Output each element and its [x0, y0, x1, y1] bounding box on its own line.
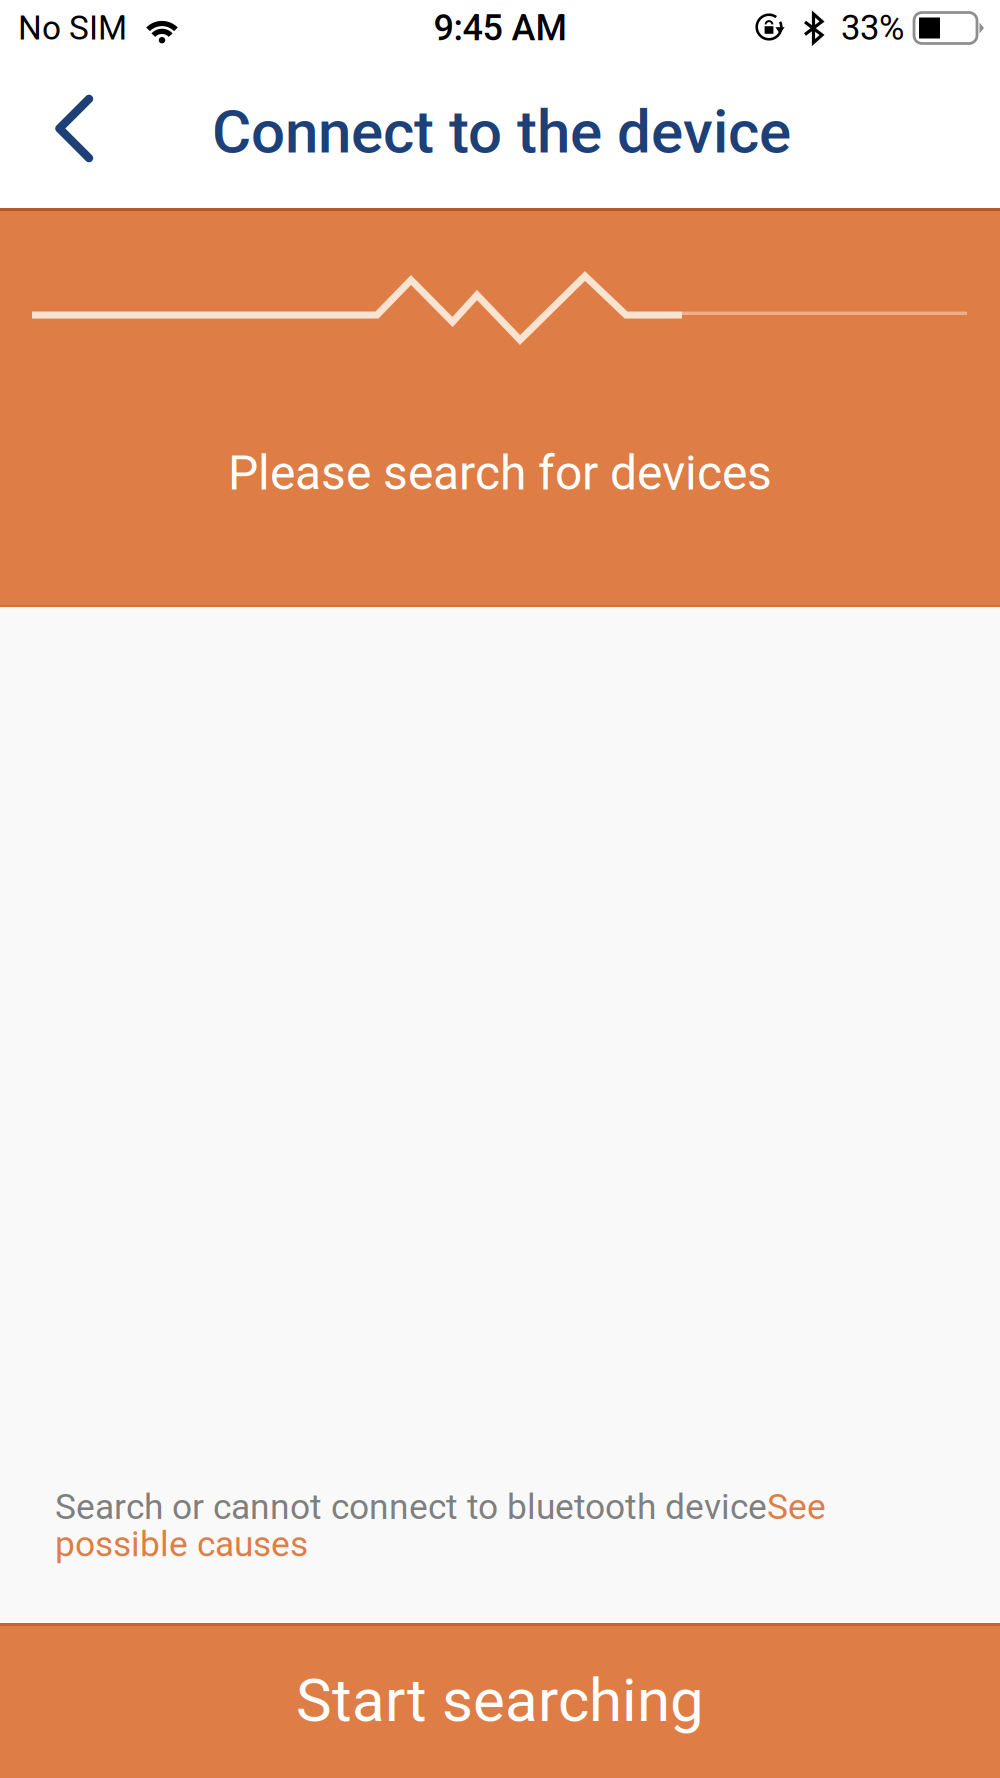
button[interactable]: Start searching	[0, 1623, 1000, 1778]
button[interactable]: Search or cannot connect to bluetooth de…	[0, 1486, 1000, 1565]
staticText: 9:45 AM	[433, 7, 566, 49]
staticText: Search or cannot connect to bluetooth de…	[55, 1486, 826, 1565]
button[interactable]: Back	[0, 80, 212, 184]
staticText: Connect to the device	[212, 97, 791, 167]
staticText: Start searching	[296, 1665, 704, 1736]
staticText: No SIM	[18, 8, 127, 48]
staticText: 33%	[841, 8, 904, 48]
staticText: Please search for devices	[228, 445, 772, 501]
